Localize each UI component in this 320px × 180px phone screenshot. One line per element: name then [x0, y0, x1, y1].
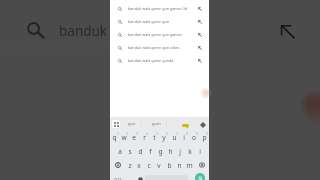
staticText: 6 [166, 131, 168, 136]
button[interactable]: Insert suggestion [194, 15, 206, 28]
button[interactable]: h [165, 144, 175, 158]
button[interactable]: gum [149, 117, 164, 130]
button[interactable]: Shift [110, 158, 125, 172]
button[interactable]: gun [124, 117, 139, 130]
button[interactable]: banduk wala game gun games 3d [110, 2, 209, 15]
button[interactable]: x [134, 158, 144, 172]
button[interactable]: Symbols [112, 172, 123, 180]
staticText: 3 [136, 131, 138, 136]
button[interactable]: banduk wala game gunda [110, 54, 209, 67]
button[interactable]: Google apps [111, 119, 121, 129]
staticText: 9 [196, 131, 198, 136]
button[interactable]: Change language [135, 172, 145, 180]
staticText: banduk wala game gun games 3d [128, 6, 197, 11]
button[interactable]: Stickers [179, 119, 191, 131]
button[interactable]: Insert suggestion [194, 2, 206, 15]
staticText: ?123 [114, 177, 122, 180]
staticText: 0 [206, 131, 208, 136]
staticText: c [147, 161, 151, 170]
button[interactable]: s [125, 144, 135, 158]
staticText: a [118, 147, 122, 156]
button[interactable]: g [155, 144, 165, 158]
button[interactable]: k [185, 144, 195, 158]
staticText: y [162, 133, 166, 142]
staticText: 2 [126, 131, 128, 136]
button[interactable]: 9 [189, 130, 199, 144]
button[interactable]: 6 [159, 130, 169, 144]
button[interactable]: n [174, 158, 184, 172]
staticText: d [138, 147, 143, 156]
staticText: x [137, 161, 141, 170]
staticText: s [128, 147, 132, 156]
staticText: banduk wala game gun [128, 19, 197, 24]
staticText: o [192, 133, 196, 142]
button[interactable]: f [145, 144, 155, 158]
button[interactable]: m [184, 158, 194, 172]
button[interactable]: v [154, 158, 164, 172]
button[interactable]: 2 [119, 130, 129, 144]
staticText: 7 [176, 131, 178, 136]
button[interactable]: c [144, 158, 154, 172]
staticText: n [177, 161, 182, 170]
staticText: j [179, 147, 181, 156]
staticText: e [132, 133, 136, 142]
button[interactable]: 5 [149, 130, 159, 144]
button[interactable]: banduk wala game gun video [110, 41, 209, 54]
staticText: 8 [186, 131, 188, 136]
button[interactable]: Keyboard settings [197, 119, 209, 131]
staticText: q [112, 133, 117, 142]
button[interactable]: j [175, 144, 185, 158]
button[interactable]: 8 [179, 130, 189, 144]
staticText: z [128, 161, 132, 170]
staticText: h [168, 147, 173, 156]
staticText: u [172, 133, 177, 142]
staticText: b [167, 161, 172, 170]
button[interactable]: 1 [110, 130, 119, 144]
staticText: 1 [117, 131, 119, 136]
staticText: p [202, 133, 207, 142]
staticText: banduk wala game gunda [128, 58, 197, 63]
staticText: banduk wala game gun video [128, 45, 197, 50]
button[interactable]: banduk wala game gun games [110, 28, 209, 41]
staticText: v [157, 161, 161, 170]
button[interactable]: banduk wala game gun [110, 15, 209, 28]
button[interactable]: l [195, 144, 205, 158]
button[interactable]: Insert suggestion [194, 28, 206, 41]
staticText: i [183, 133, 185, 142]
button[interactable]: Insert suggestion [194, 41, 206, 54]
staticText: banduk wala game gun games [128, 32, 197, 37]
button[interactable]: 7 [169, 130, 179, 144]
button[interactable]: 4 [139, 130, 149, 144]
button[interactable]: Search [195, 173, 205, 180]
button[interactable]: b [164, 158, 174, 172]
staticText: g [158, 147, 163, 156]
button[interactable]: a [114, 144, 125, 158]
staticText: k [188, 147, 192, 156]
staticText: f [149, 147, 152, 156]
staticText: r [143, 133, 146, 142]
button[interactable]: Insert suggestion [194, 54, 206, 67]
button[interactable]: d [135, 144, 145, 158]
staticText: t [153, 133, 156, 142]
staticText: banduk w [59, 22, 122, 40]
staticText: l [199, 147, 201, 156]
staticText: gun [128, 121, 136, 126]
button[interactable]: Backspace [194, 158, 209, 172]
staticText: 4 [146, 131, 148, 136]
button[interactable]: 0 [199, 130, 209, 144]
staticText: 5 [156, 131, 158, 136]
staticText: w [121, 133, 127, 142]
staticText: gum [152, 121, 161, 126]
button[interactable]: 3 [129, 130, 139, 144]
staticText: m [186, 161, 193, 170]
button[interactable]: z [125, 158, 134, 172]
